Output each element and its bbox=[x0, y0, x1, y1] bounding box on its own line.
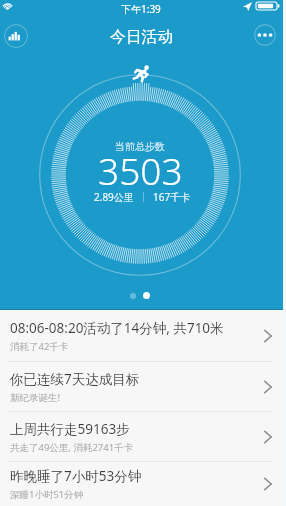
staticText: 2.89公里 bbox=[94, 190, 134, 204]
staticText: 下午1:39 bbox=[121, 2, 161, 16]
staticText: 新纪录诞生! bbox=[10, 391, 61, 404]
staticText: 167千卡 bbox=[153, 190, 191, 204]
staticText: 3503 bbox=[98, 145, 183, 195]
staticText: 今日活动 bbox=[110, 27, 174, 47]
staticText: 上周共行走59163步 bbox=[10, 420, 130, 438]
button[interactable]: 昨晚睡了7小时53分钟 bbox=[0, 462, 286, 506]
button[interactable]: Statistics bbox=[4, 24, 28, 48]
staticText: 深睡1小时51分钟 bbox=[10, 488, 84, 501]
button[interactable]: 你已连续7天达成目标 bbox=[0, 362, 286, 411]
staticText: 当前总步数 bbox=[115, 140, 165, 153]
staticText: 你已连续7天达成目标 bbox=[10, 370, 140, 388]
staticText: 08:06-08:20活动了14分钟, 共710米 bbox=[10, 319, 224, 337]
staticText: 共走了49公里, 消耗2741千卡 bbox=[10, 441, 134, 454]
button[interactable]: More options bbox=[254, 24, 276, 46]
button[interactable]: 08:06-08:20活动了14分钟, 共710米 bbox=[0, 310, 286, 361]
staticText: 昨晚睡了7小时53分钟 bbox=[10, 467, 142, 485]
button[interactable]: 上周共行走59163步 bbox=[0, 412, 286, 461]
staticText: 消耗了42千卡 bbox=[10, 340, 69, 353]
